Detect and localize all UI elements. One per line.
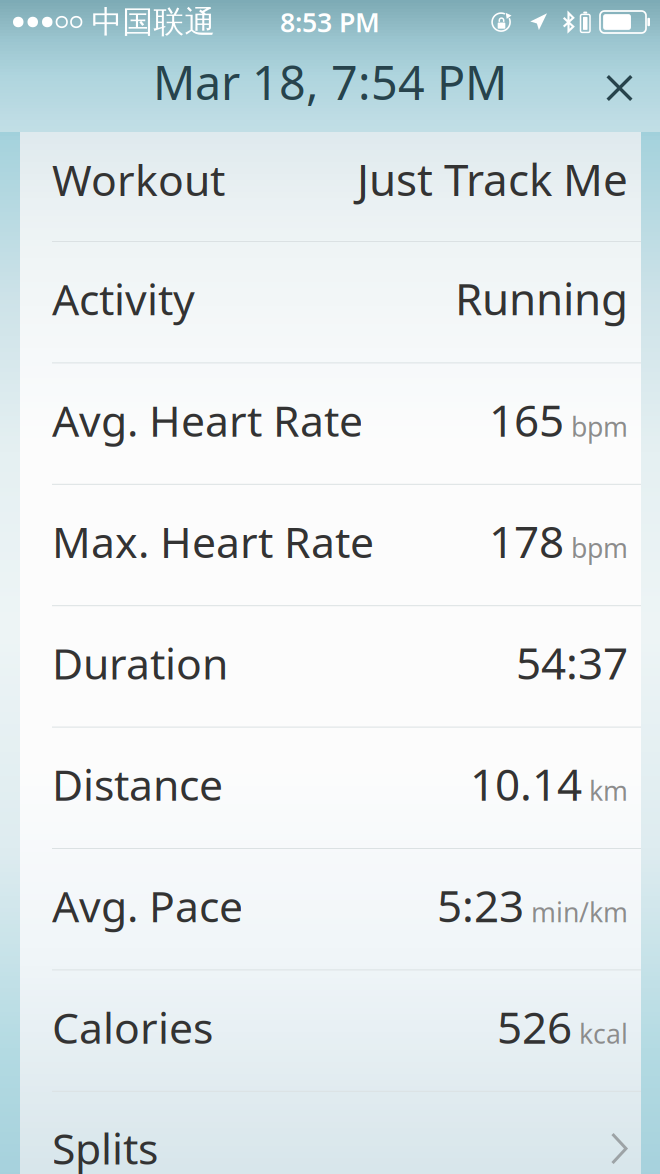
button[interactable]: Close — [590, 52, 649, 123]
staticText: bpm — [571, 530, 628, 565]
staticText: 54:37 — [516, 633, 628, 692]
staticText: 8:53 PM — [280, 4, 380, 40]
button[interactable]: Splits — [20, 1092, 641, 1174]
staticText: Activity — [52, 270, 195, 327]
staticText: 中国联通 — [91, 3, 215, 41]
staticText: Just Track Me — [357, 150, 628, 208]
button[interactable]: Workout — [20, 132, 641, 241]
staticText: kcal — [579, 1016, 628, 1051]
staticText: Max. Heart Rate — [52, 513, 374, 570]
button[interactable]: Avg. Pace — [20, 849, 641, 969]
button[interactable]: Duration — [20, 606, 641, 727]
staticText: Workout — [52, 151, 225, 208]
staticText: 165 — [489, 390, 564, 449]
staticText: Mar 18, 7:54 PM — [153, 51, 507, 113]
staticText: 526 — [497, 997, 572, 1056]
staticText: Splits — [52, 1120, 158, 1174]
staticText: Avg. Pace — [52, 877, 243, 934]
staticText: Distance — [52, 756, 223, 813]
staticText: km — [589, 773, 628, 808]
staticText: 5:23 — [437, 876, 524, 934]
staticText: bpm — [571, 409, 628, 444]
staticText: 178 — [489, 512, 564, 570]
staticText: Duration — [52, 635, 228, 691]
button[interactable]: Activity — [20, 242, 641, 362]
staticText: Running — [455, 269, 628, 327]
button[interactable]: Max. Heart Rate — [20, 485, 641, 605]
button[interactable]: Calories — [20, 970, 641, 1091]
staticText: Avg. Heart Rate — [52, 392, 363, 448]
staticText: Calories — [52, 999, 213, 1055]
staticText: min/km — [531, 894, 628, 930]
button[interactable]: Distance — [20, 728, 641, 848]
button[interactable]: Avg. Heart Rate — [20, 363, 641, 484]
staticText: 10.14 — [470, 755, 582, 813]
